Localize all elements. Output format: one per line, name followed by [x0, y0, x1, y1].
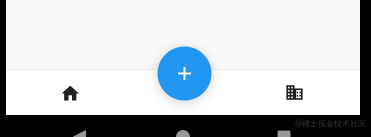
button[interactable]: Recent apps	[271, 126, 297, 137]
button[interactable]: Back	[66, 125, 92, 137]
button[interactable]: Home	[170, 126, 196, 137]
button[interactable]: Home	[38, 67, 98, 113]
button[interactable]: Businesses	[264, 69, 324, 115]
staticText: @稀土掘金技术社区	[295, 118, 366, 129]
button[interactable]: Add	[157, 46, 211, 100]
